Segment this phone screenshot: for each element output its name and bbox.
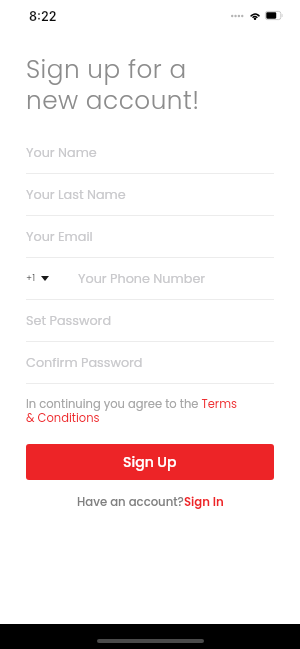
- staticText: +1: [26, 272, 36, 285]
- staticText: Your Email: [26, 228, 93, 246]
- staticText: Your Phone Number: [78, 270, 206, 288]
- staticText: Confirm Password: [26, 354, 143, 372]
- staticText: Sign In: [184, 494, 224, 510]
- button[interactable]: Your Name: [0, 132, 300, 173]
- button[interactable]: Your Email: [0, 216, 300, 257]
- staticText: In continuing you agree to the Terms & C…: [26, 396, 238, 426]
- staticText: Sign up for a new account!: [26, 52, 200, 118]
- button[interactable]: Sign Up: [26, 444, 274, 480]
- button[interactable]: Your Last Name: [0, 174, 300, 215]
- button[interactable]: +1: [26, 272, 49, 285]
- staticText: Your Name: [26, 144, 97, 162]
- staticText: Sign Up: [123, 452, 177, 472]
- button[interactable]: Have an account?: [77, 494, 224, 510]
- button[interactable]: Confirm Password: [0, 342, 300, 383]
- staticText: Your Last Name: [26, 186, 126, 204]
- staticText: Have an account?: [77, 494, 184, 510]
- button[interactable]: Set Password: [0, 300, 300, 341]
- staticText: Set Password: [26, 312, 112, 330]
- staticText: 8:22: [29, 9, 57, 24]
